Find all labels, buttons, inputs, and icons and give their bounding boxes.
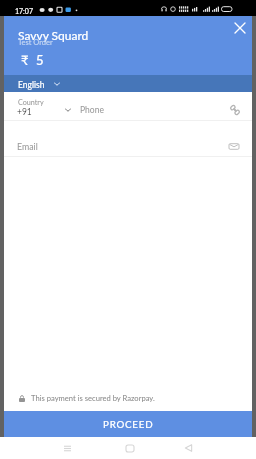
staticText: Savvy Squard xyxy=(18,28,89,42)
staticText: Test Order xyxy=(18,38,53,47)
button[interactable]: Phone xyxy=(74,92,252,120)
button[interactable]: PROCEED xyxy=(4,411,252,437)
staticText: 5 xyxy=(36,52,44,68)
button[interactable]: Close xyxy=(228,16,252,40)
staticText: Phone xyxy=(80,105,104,115)
staticText: Email xyxy=(17,141,38,152)
button[interactable]: Home xyxy=(118,437,142,459)
button[interactable]: Back xyxy=(176,437,200,459)
staticText: ₹ xyxy=(21,52,29,68)
staticText: +91 xyxy=(17,107,32,117)
button[interactable]: English xyxy=(4,75,252,92)
staticText: 17:07 xyxy=(15,7,33,15)
staticText: Country xyxy=(18,98,44,107)
staticText: This payment is secured by Razorpay. xyxy=(31,393,155,402)
button[interactable]: Recent apps xyxy=(55,437,79,459)
button[interactable]: Email xyxy=(4,121,252,156)
staticText: PROCEED xyxy=(103,418,154,430)
staticText: English xyxy=(18,80,45,90)
button[interactable]: Country xyxy=(4,92,74,120)
